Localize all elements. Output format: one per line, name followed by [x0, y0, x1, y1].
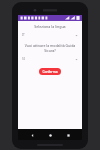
button[interactable]: Home [46, 131, 54, 139]
button[interactable]: IT [22, 33, 78, 38]
staticText: Conferma [42, 70, 58, 74]
staticText: SI [22, 57, 25, 61]
button[interactable]: Back [28, 131, 36, 139]
staticText: Vuoi attivare la modalità Guida Sicura? [21, 43, 79, 53]
button[interactable]: Recents [64, 131, 72, 139]
button[interactable]: SI [22, 57, 78, 62]
staticText: IT [22, 33, 25, 37]
button[interactable]: Conferma [39, 68, 61, 75]
staticText: Seleziona la lingua [22, 24, 78, 29]
